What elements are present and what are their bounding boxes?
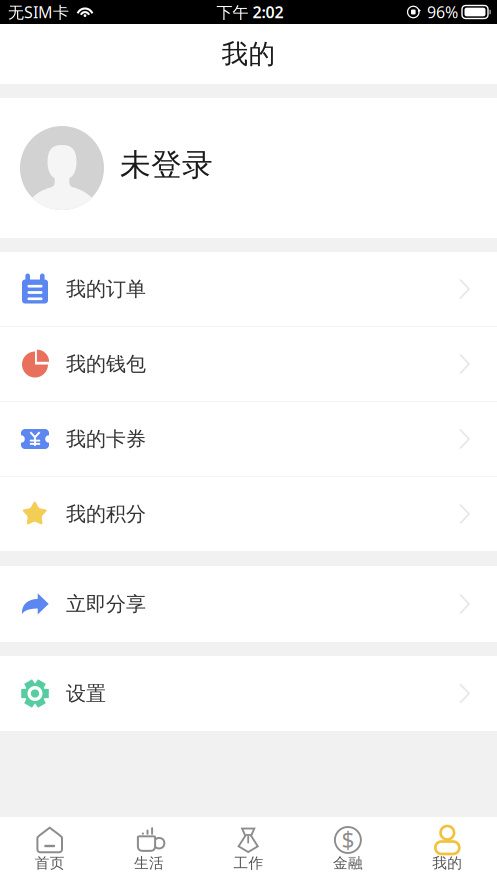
button[interactable]: 生活 [99, 817, 199, 883]
button[interactable]: 工作 [199, 817, 298, 883]
button[interactable]: 设置 [0, 656, 497, 731]
staticText: 我的积分 [66, 502, 146, 526]
staticText: 工作 [233, 854, 263, 872]
staticText: 我的 [432, 854, 462, 872]
staticText: 我的订单 [66, 277, 146, 301]
staticText: 金融 [333, 854, 363, 872]
staticText: 我的卡券 [66, 427, 146, 451]
button[interactable]: 我的订单 [0, 252, 497, 326]
button[interactable]: 未登录 [0, 98, 497, 238]
staticText: 无SIM卡 [8, 1, 69, 23]
button[interactable]: 首页 [0, 817, 99, 883]
button[interactable]: 我的卡券 [0, 402, 497, 476]
button[interactable]: 我的 [398, 817, 497, 883]
staticText: $ [341, 825, 354, 855]
staticText: 我的钱包 [66, 352, 146, 376]
staticText: 96% [427, 1, 458, 23]
staticText: 首页 [35, 854, 65, 872]
button[interactable]: 我的钱包 [0, 327, 497, 401]
staticText: 未登录 [120, 146, 213, 184]
staticText: 我的 [221, 38, 275, 70]
button[interactable]: 我的积分 [0, 477, 497, 551]
staticText: 立即分享 [66, 592, 146, 616]
button[interactable]: 立即分享 [0, 566, 497, 642]
button[interactable]: $ [298, 817, 398, 883]
staticText: 设置 [66, 681, 106, 706]
staticText: 生活 [134, 854, 164, 872]
staticText: 下午 2:02 [216, 1, 283, 23]
